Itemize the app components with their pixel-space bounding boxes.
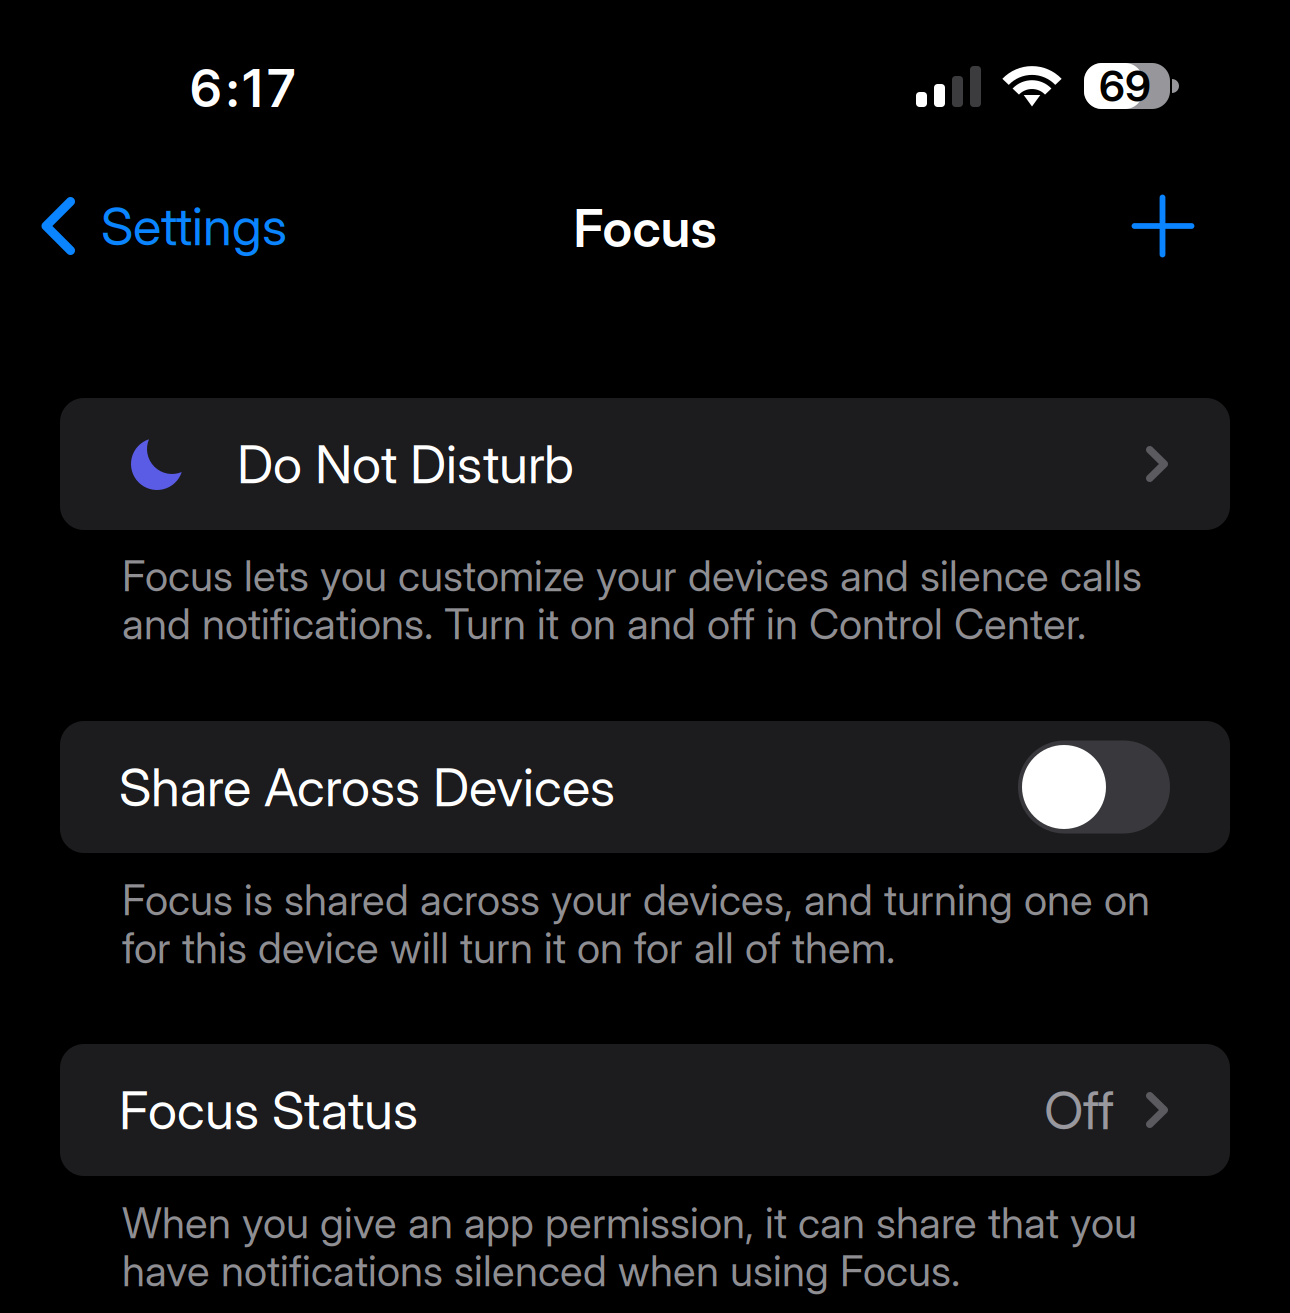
staticText: have notifications silenced when using F…	[122, 1246, 960, 1296]
staticText: Share Across Devices	[119, 755, 615, 819]
staticText: 7	[267, 56, 295, 119]
staticText: :	[226, 56, 238, 119]
staticText: 1	[243, 56, 263, 119]
staticText: 6	[190, 56, 222, 119]
button[interactable]: Add Focus	[1115, 178, 1211, 274]
staticText: Focus	[573, 196, 716, 259]
button[interactable]: Focus Status	[60, 1044, 1230, 1176]
staticText: Focus Status	[119, 1078, 418, 1142]
staticText: Off	[1044, 1078, 1114, 1142]
staticText: Focus lets you customize your devices an…	[122, 551, 1142, 601]
button[interactable]: Share Across Devices	[1018, 740, 1170, 833]
staticText: for this device will turn it on for all …	[122, 923, 895, 973]
staticText: and notifications. Turn it on and off in…	[122, 599, 1086, 649]
button[interactable]: Do Not Disturb	[60, 398, 1230, 530]
staticText: 69	[1099, 60, 1151, 112]
staticText: Do Not Disturb	[237, 432, 574, 496]
staticText: When you give an app permission, it can …	[122, 1198, 1137, 1248]
staticText: Focus is shared across your devices, and…	[122, 875, 1150, 925]
staticText: Settings	[101, 194, 287, 258]
button[interactable]: Settings	[41, 178, 341, 274]
